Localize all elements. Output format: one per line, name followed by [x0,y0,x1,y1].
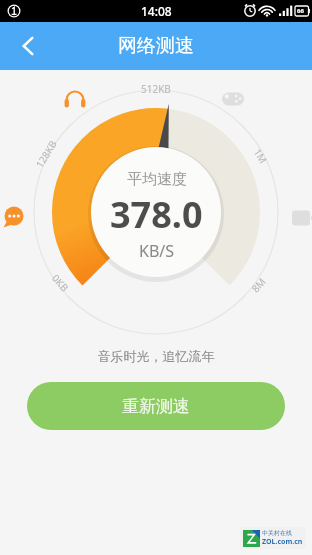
staticText: 网络测速 [118,34,194,58]
button[interactable]: 重新测速 [27,382,285,430]
staticText: 8M [248,275,269,295]
staticText: 512KB [141,82,171,96]
button[interactable]: Back [0,22,56,70]
staticText: 0KB [49,271,72,295]
staticText: 66 [297,7,304,15]
staticText: 音乐时光，追忆流年 [0,348,312,364]
staticText: KB/S [139,240,175,262]
staticText: 378.0 [110,190,203,239]
staticText: 14:08 [141,3,172,19]
staticText: ZOL.com.cn [262,537,303,547]
staticText: 中关村在线 [262,529,292,537]
staticText: 平均速度 [127,170,187,189]
staticText: 重新测速 [122,396,190,417]
staticText: 128KB [32,138,60,170]
staticText: 1M [251,146,270,166]
